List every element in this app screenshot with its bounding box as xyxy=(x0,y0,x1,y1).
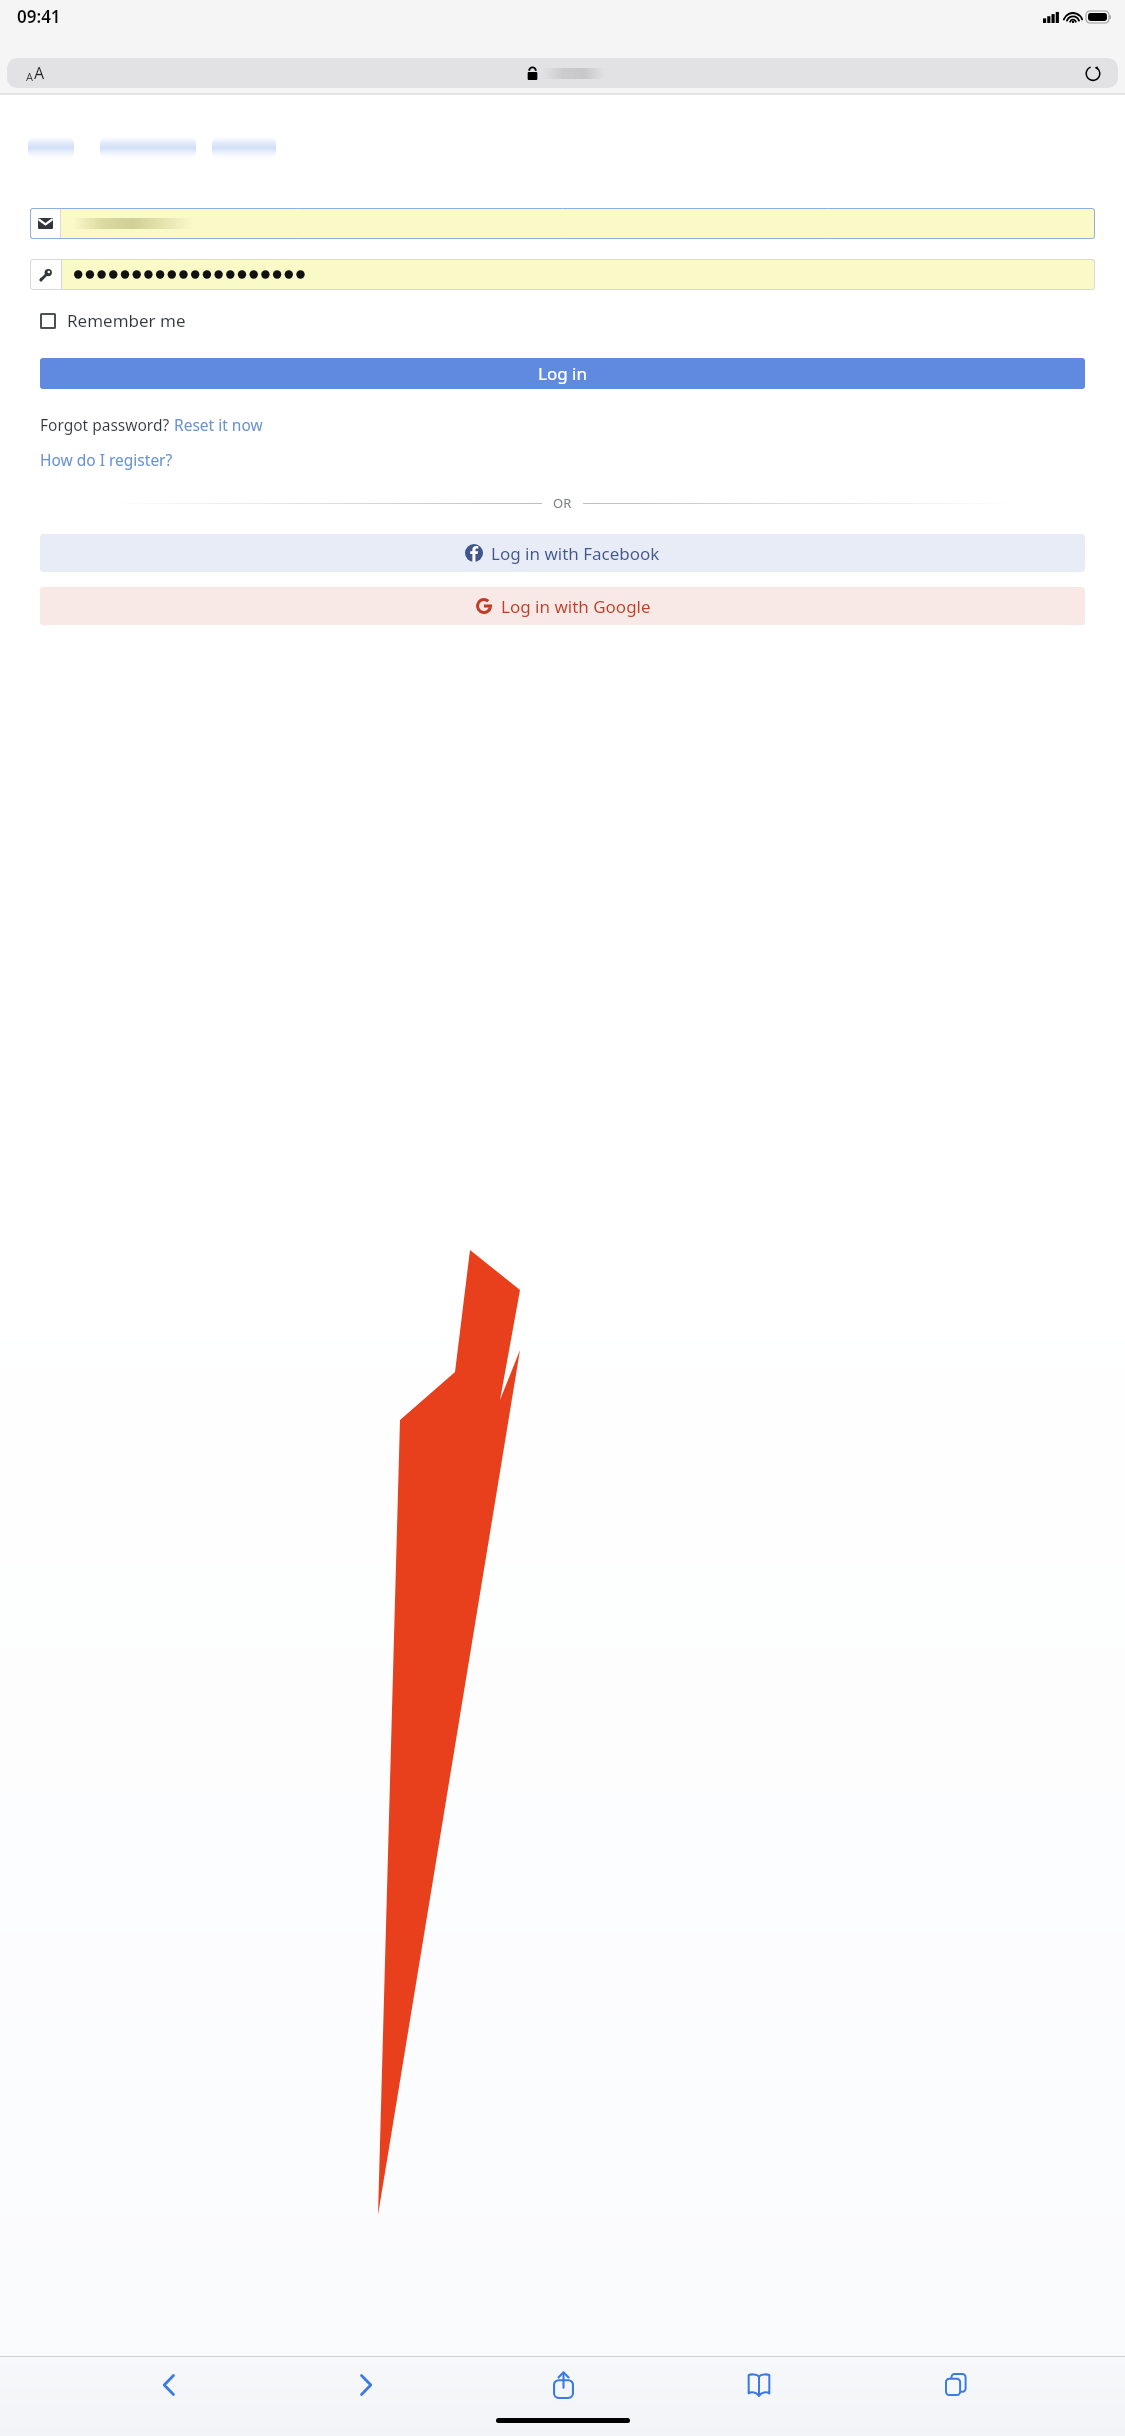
button[interactable]: Text size options xyxy=(7,58,63,88)
staticText: A xyxy=(34,62,45,84)
staticText: Log in with Google xyxy=(501,595,651,618)
button[interactable]: How do I register? xyxy=(40,449,173,470)
staticText: Log in xyxy=(538,362,587,385)
button[interactable] xyxy=(30,208,1095,239)
staticText: Reset it now xyxy=(174,414,263,435)
button[interactable]: Back xyxy=(141,2361,197,2409)
staticText: A xyxy=(26,69,34,84)
button[interactable]: Log in with Google xyxy=(40,587,1085,625)
button[interactable]: Remember me xyxy=(40,309,186,332)
button[interactable]: Tabs xyxy=(928,2361,984,2409)
button[interactable]: Reset it now xyxy=(174,414,263,435)
staticText: How do I register? xyxy=(40,449,173,470)
button[interactable]: Forward xyxy=(338,2361,394,2409)
staticText: Remember me xyxy=(67,309,186,332)
staticText: Forgot password? xyxy=(40,414,174,435)
staticText: 09:41 xyxy=(17,5,61,28)
button[interactable]: Share xyxy=(535,2361,591,2409)
staticText: Log in with Facebook xyxy=(491,542,660,565)
button[interactable]: Reload page xyxy=(1068,58,1118,88)
button[interactable]: Log in with Facebook xyxy=(40,534,1085,572)
button[interactable] xyxy=(30,259,1095,290)
staticText: OR xyxy=(553,494,572,512)
button[interactable]: Text size options xyxy=(7,58,1118,88)
button[interactable]: Log in xyxy=(40,358,1085,389)
button[interactable]: Bookmarks xyxy=(731,2361,787,2409)
